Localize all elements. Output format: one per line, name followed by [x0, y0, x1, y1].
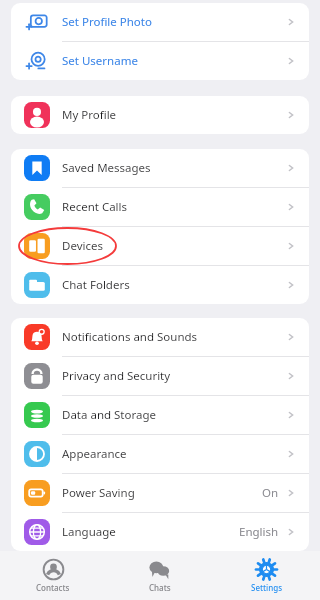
staticText: Set Username [62, 53, 138, 69]
button[interactable]: Notifications and Sounds [11, 318, 309, 356]
staticText: My Profile [62, 107, 117, 123]
staticText: Data and Storage [62, 407, 157, 423]
staticText: Set Profile Photo [62, 14, 152, 30]
staticText: Chat Folders [62, 277, 130, 293]
button[interactable]: Devices [11, 227, 309, 265]
staticText: Language [62, 524, 116, 540]
staticText: Power Saving [62, 485, 135, 501]
button[interactable]: Power Saving [11, 474, 309, 512]
staticText: Privacy and Security [62, 368, 171, 384]
button[interactable]: Saved Messages [11, 149, 309, 187]
button[interactable]: Settings [213, 551, 320, 600]
button[interactable]: Contacts [0, 551, 106, 600]
staticText: Settings [251, 582, 283, 593]
button[interactable]: Set Profile Photo [11, 3, 309, 41]
staticText: Contacts [36, 582, 70, 593]
staticText: Saved Messages [62, 160, 151, 176]
button[interactable]: Language [11, 513, 309, 551]
button[interactable]: Chat Folders [11, 266, 309, 304]
staticText: Recent Calls [62, 199, 128, 215]
staticText: Devices [62, 238, 103, 254]
button[interactable]: Recent Calls [11, 188, 309, 226]
button[interactable]: My Profile [11, 96, 309, 134]
staticText: Notifications and Sounds [62, 329, 198, 345]
staticText: Appearance [62, 446, 127, 462]
button[interactable]: Privacy and Security [11, 357, 309, 395]
button[interactable]: Set Username [11, 42, 309, 80]
button[interactable]: Chats [106, 551, 213, 600]
staticText: On [262, 485, 279, 501]
button[interactable]: Data and Storage [11, 396, 309, 434]
staticText: Chats [149, 582, 171, 593]
button[interactable]: Appearance [11, 435, 309, 473]
staticText: English [239, 524, 279, 540]
